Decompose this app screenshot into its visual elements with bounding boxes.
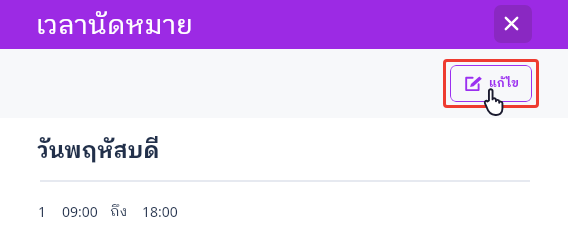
staticText: ถึง [110, 200, 128, 223]
staticText: 1 [38, 202, 47, 221]
staticText: 18:00 [142, 202, 178, 221]
button[interactable]: แก้ไข [450, 65, 532, 102]
staticText: เวลานัดหมาย [36, 4, 194, 49]
button[interactable]: Close [494, 5, 532, 43]
staticText: วันพฤหัสบดี [37, 133, 160, 169]
staticText: แก้ไข [489, 74, 519, 93]
staticText: 09:00 [62, 202, 98, 221]
